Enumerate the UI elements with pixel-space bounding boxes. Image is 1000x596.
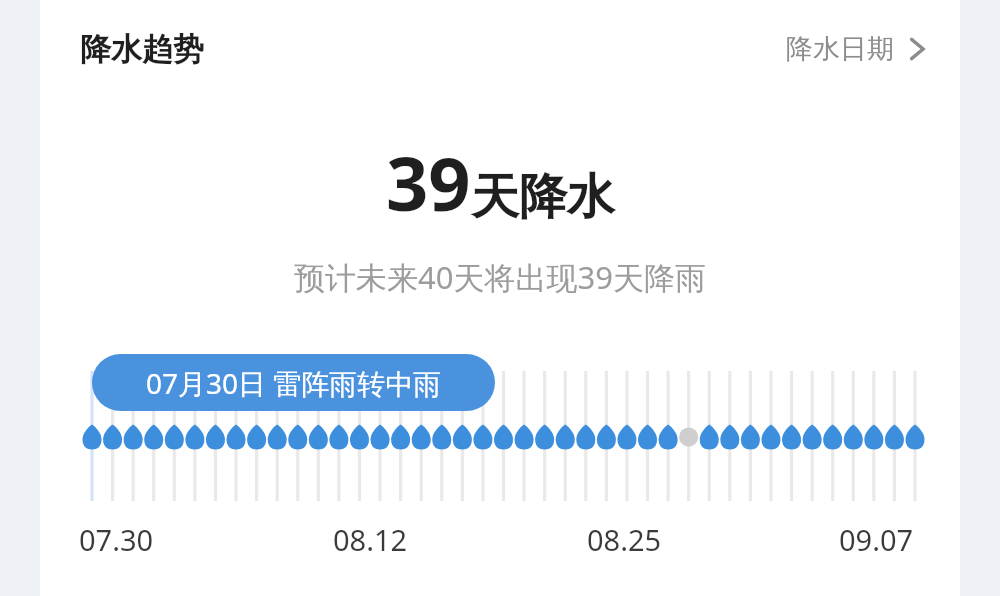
other: Open precipitation dates (908, 34, 926, 64)
staticText: 08.25 (587, 520, 662, 559)
staticText: 预计未来40天将出现39天降雨 (294, 256, 706, 298)
staticText: 08.12 (333, 520, 408, 559)
staticText: 39 (386, 132, 471, 233)
button[interactable]: 降水日期 (782, 24, 930, 74)
staticText: 07.30 (79, 520, 154, 559)
button[interactable]: Precipitation trend chart (40, 0, 960, 596)
button[interactable]: 07月30日 雷阵雨转中雨 (92, 354, 495, 411)
staticText: 09.07 (839, 520, 914, 559)
staticText: 07月30日 雷阵雨转中雨 (146, 364, 442, 402)
staticText: 天降水 (471, 167, 615, 227)
staticText: 降水日期 (786, 32, 894, 66)
staticText: 降水趋势 (80, 30, 204, 69)
